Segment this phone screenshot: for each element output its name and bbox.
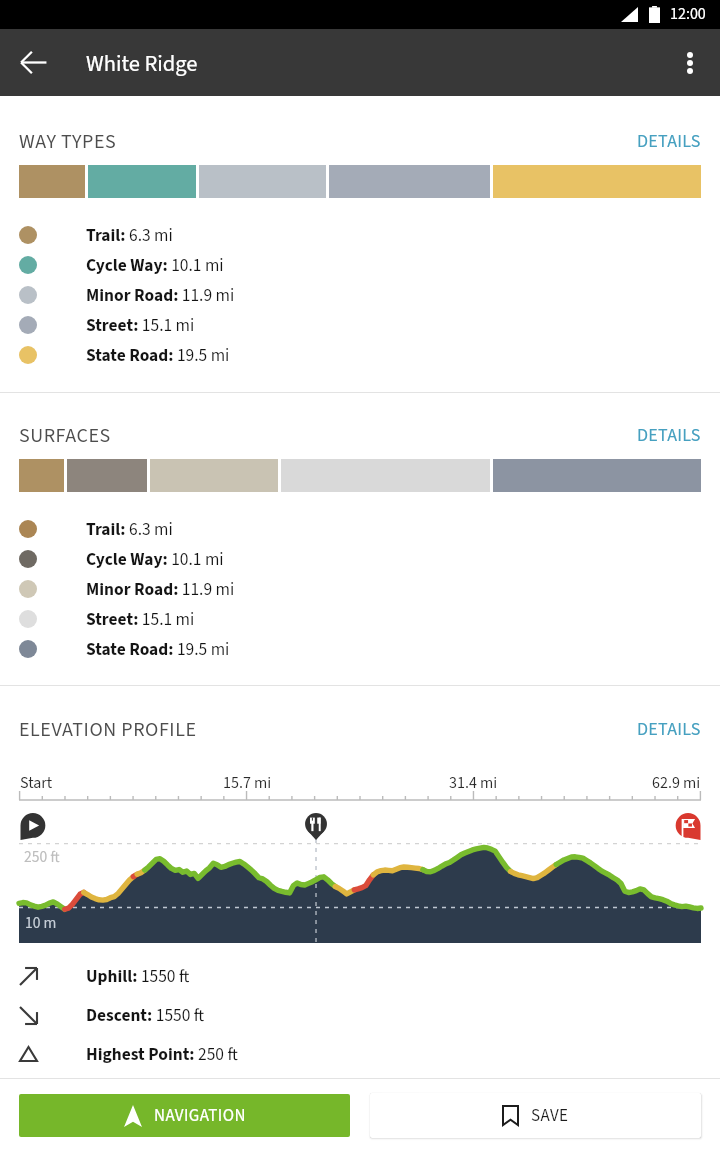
staticText: 62.9 mi (652, 772, 701, 792)
staticText: Minor Road: 11.9 mi (86, 283, 235, 308)
staticText: Street: 15.1 mi (86, 607, 195, 632)
button[interactable]: More options (660, 29, 720, 96)
staticText: WAY TYPES (19, 128, 117, 156)
staticText: State Road: 19.5 mi (86, 637, 230, 662)
staticText: ELEVATION PROFILE (19, 716, 197, 744)
button[interactable]: DETAILS (637, 129, 701, 155)
staticText: SAVE (531, 1104, 569, 1128)
staticText: Minor Road: 11.9 mi (86, 577, 235, 602)
staticText: Street: 15.1 mi (86, 313, 195, 338)
staticText: DETAILS (637, 717, 701, 743)
staticText: Trail: 6.3 mi (86, 223, 173, 248)
staticText: 10 m (25, 912, 57, 934)
staticText: Cycle Way: 10.1 mi (86, 547, 224, 572)
button[interactable]: DETAILS (637, 423, 701, 449)
staticText: State Road: 19.5 mi (86, 343, 230, 368)
staticText: 250 ft (24, 846, 60, 868)
staticText: Start (20, 772, 53, 792)
staticText: Cycle Way: 10.1 mi (86, 253, 224, 278)
button[interactable]: DETAILS (637, 717, 701, 743)
staticText: Highest Point: 250 ft (86, 1042, 238, 1067)
button[interactable]: SAVE (370, 1093, 701, 1138)
staticText: Uphill: 1550 ft (86, 964, 190, 989)
staticText: 12:00 (670, 3, 706, 26)
staticText: White Ridge (86, 48, 198, 80)
button[interactable]: NAVIGATION (19, 1094, 350, 1137)
staticText: DETAILS (637, 129, 701, 155)
staticText: 15.7 mi (223, 772, 272, 792)
staticText: SURFACES (19, 422, 111, 450)
staticText: Trail: 6.3 mi (86, 517, 173, 542)
staticText: 31.4 mi (449, 772, 498, 792)
staticText: Descent: 1550 ft (86, 1003, 205, 1028)
button[interactable]: Back (0, 29, 67, 96)
staticText: DETAILS (637, 423, 701, 449)
staticText: NAVIGATION (154, 1104, 246, 1128)
